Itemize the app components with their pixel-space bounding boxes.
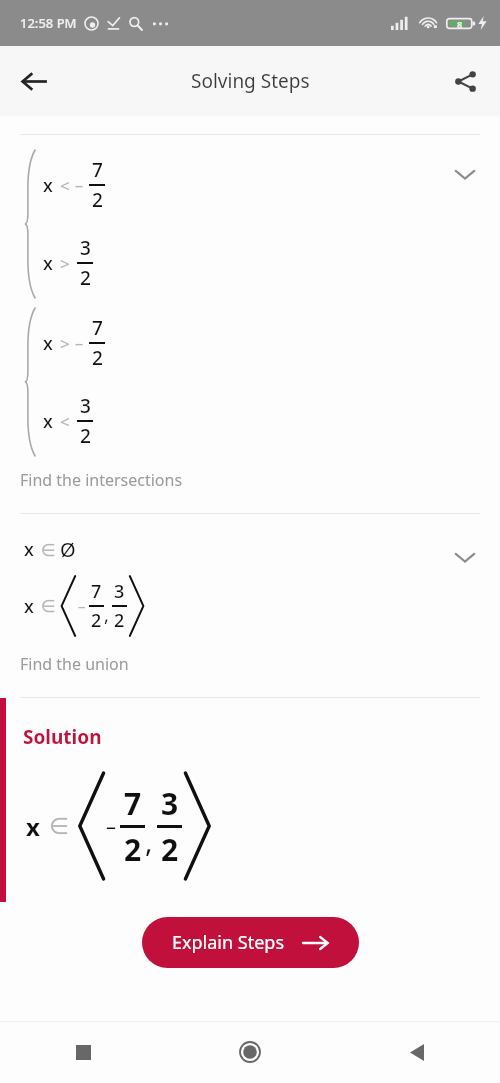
- staticText: 7: [92, 157, 103, 183]
- staticText: >: [60, 252, 70, 275]
- staticText: –: [75, 174, 84, 196]
- staticText: <: [60, 174, 70, 197]
- staticText: 3: [161, 783, 179, 824]
- staticText: x: [43, 331, 53, 356]
- staticText: 12:58 PM: [20, 14, 77, 32]
- staticText: Find the intersections: [20, 469, 183, 491]
- staticText: x: [24, 594, 34, 619]
- staticText: –: [78, 596, 86, 616]
- button[interactable]: Back: [333, 1021, 500, 1083]
- staticText: –: [75, 332, 84, 354]
- staticText: Ø: [60, 536, 76, 563]
- staticText: 2: [161, 829, 179, 870]
- staticText: Explain Steps: [172, 930, 285, 955]
- staticText: 7: [124, 783, 142, 824]
- staticText: <: [60, 410, 70, 433]
- staticText: –: [106, 813, 116, 840]
- staticText: Solution: [23, 724, 102, 750]
- staticText: 3: [114, 579, 125, 604]
- staticText: 2: [80, 265, 91, 291]
- staticText: x: [43, 409, 53, 434]
- staticText: x: [26, 810, 40, 843]
- button[interactable]: Home: [166, 1021, 333, 1083]
- button[interactable]: Back: [10, 57, 58, 105]
- staticText: 7: [91, 579, 102, 604]
- staticText: 2: [91, 608, 102, 633]
- staticText: 3: [80, 235, 91, 261]
- staticText: ∈: [41, 596, 56, 616]
- button[interactable]: Recent apps: [0, 1021, 166, 1083]
- button[interactable]: Collapse step: [444, 153, 486, 195]
- button[interactable]: Share: [441, 57, 489, 105]
- button[interactable]: Collapse step: [444, 536, 486, 578]
- staticText: 3: [80, 393, 91, 419]
- staticText: x: [24, 537, 34, 562]
- staticText: ∈: [49, 813, 70, 840]
- staticText: Solving Steps: [191, 68, 310, 94]
- staticText: 2: [92, 345, 103, 371]
- button[interactable]: Explain Steps: [142, 917, 359, 968]
- staticText: ,: [104, 603, 109, 628]
- staticText: >: [60, 332, 70, 355]
- staticText: x: [43, 173, 53, 198]
- staticText: ,: [145, 822, 153, 860]
- staticText: 2: [80, 423, 91, 449]
- staticText: 2: [114, 608, 125, 633]
- staticText: 8: [457, 18, 463, 30]
- staticText: x: [43, 251, 53, 276]
- staticText: 2: [124, 829, 142, 870]
- staticText: ∈: [41, 540, 56, 560]
- staticText: 7: [92, 315, 103, 341]
- staticText: Find the union: [20, 653, 129, 675]
- staticText: 2: [92, 187, 103, 213]
